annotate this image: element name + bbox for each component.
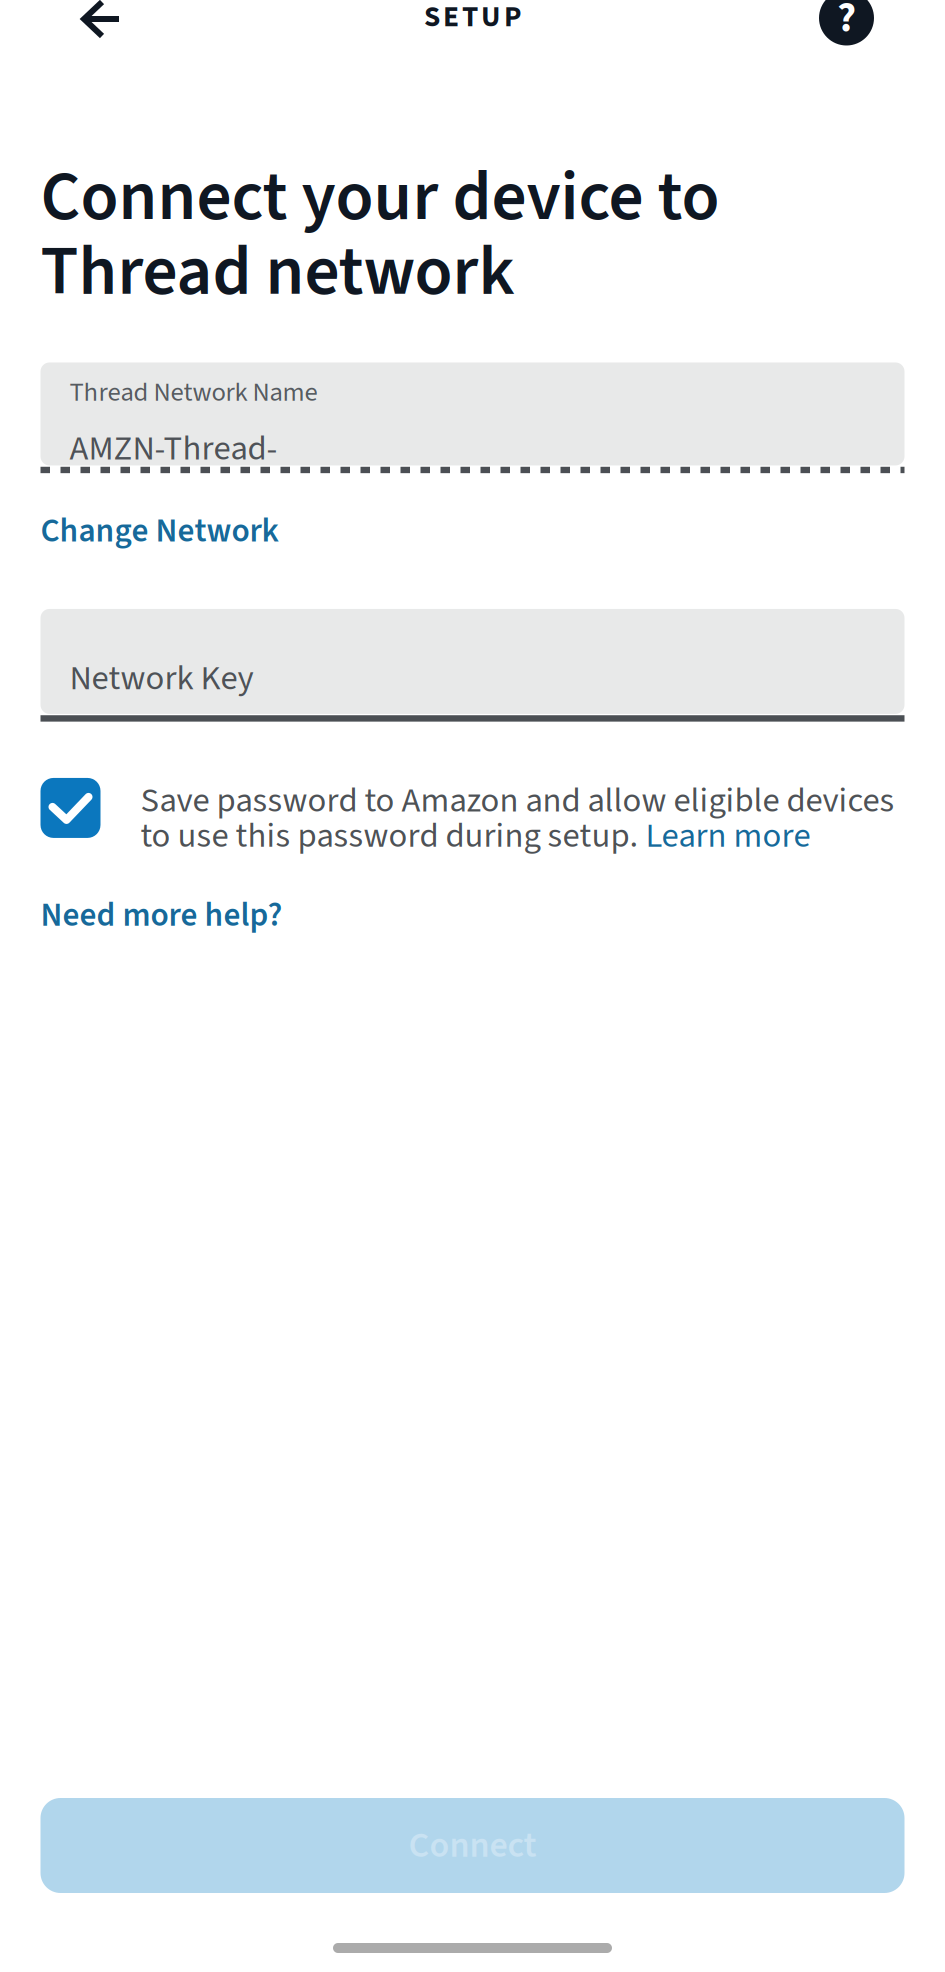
staticText: Thread network [40,223,514,321]
staticText: Change Network [40,507,278,555]
button[interactable]: Back [0,4,199,50]
staticText: Save password to Amazon and allow eligib… [140,776,894,825]
staticText: Learn more [645,811,810,861]
staticText: SETUP [424,0,521,38]
staticText: Network Key [69,654,253,703]
button[interactable]: Help [756,4,945,50]
staticText: ? [837,0,856,47]
staticText: AMZN-Thread- [69,424,277,473]
button[interactable]: Connect [40,1798,904,1893]
staticText: Need more help? [40,892,282,939]
staticText: Thread Network Name [69,373,317,411]
button[interactable]: Learn more [645,811,810,861]
staticText: Connect [408,1820,536,1871]
button[interactable]: Change Network [40,473,904,569]
button[interactable]: Save password to Amazon [40,776,100,836]
staticText: Connect your device to [40,148,719,247]
button[interactable]: Need more help? [40,861,904,949]
staticText: to use this password during setup. [140,811,645,861]
